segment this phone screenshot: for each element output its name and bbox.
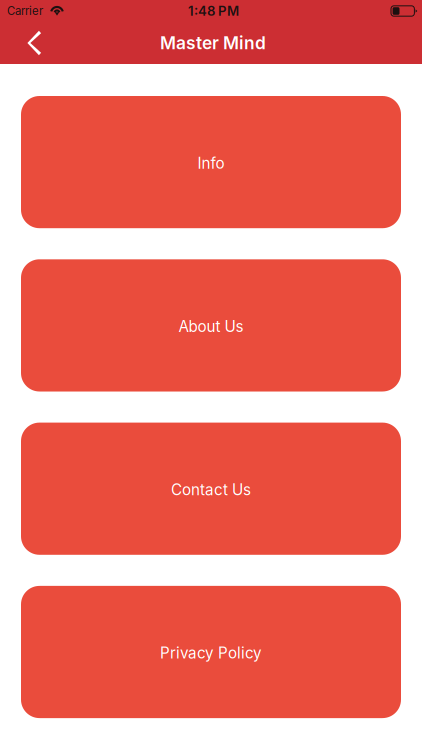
staticText: Info bbox=[197, 154, 224, 172]
button[interactable]: Contact Us bbox=[21, 423, 401, 555]
staticText: Contact Us bbox=[171, 480, 251, 499]
button[interactable]: Info bbox=[21, 96, 401, 228]
button[interactable]: About Us bbox=[21, 259, 401, 391]
staticText: About Us bbox=[178, 317, 243, 336]
staticText: Privacy Policy bbox=[160, 644, 262, 662]
staticText: Master Mind bbox=[160, 32, 266, 53]
staticText: Carrier bbox=[7, 4, 43, 18]
button[interactable]: Privacy Policy bbox=[21, 586, 401, 718]
staticText: 1:48 PM bbox=[188, 3, 239, 19]
button[interactable]: Back bbox=[0, 22, 56, 64]
